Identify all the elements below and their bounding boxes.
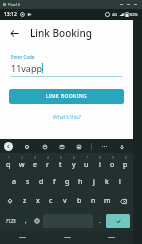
- staticText: 7: [86, 156, 88, 160]
- staticText: 9: [112, 156, 114, 160]
- button[interactable]: h: [74, 172, 87, 191]
- button[interactable]: 1: [1, 153, 15, 172]
- staticText: x: [36, 196, 40, 206]
- staticText: 5: [60, 156, 62, 160]
- staticText: 0: [125, 156, 127, 160]
- button[interactable]: ,: [20, 212, 31, 230]
- button[interactable]: Enter: [106, 214, 130, 228]
- button[interactable]: b: [72, 191, 86, 211]
- staticText: 11vapp: [11, 62, 42, 74]
- staticText: 13:12: [4, 11, 17, 18]
- staticText: What's this?: [53, 114, 81, 121]
- staticText: q: [6, 160, 11, 170]
- button[interactable]: Shift: [1, 191, 18, 211]
- button[interactable]: z: [18, 191, 31, 211]
- staticText: 82%: [130, 12, 138, 17]
- button[interactable]: c: [44, 191, 58, 211]
- button[interactable]: Back: [0, 231, 45, 244]
- button[interactable]: Backspace: [114, 191, 132, 211]
- button[interactable]: v: [58, 191, 72, 211]
- button[interactable]: a: [7, 172, 21, 191]
- staticText: 1: [8, 156, 10, 160]
- button[interactable]: 4: [41, 153, 54, 172]
- staticText: ,: [25, 217, 27, 225]
- staticText: j: [93, 177, 95, 187]
- button[interactable]: ?123: [2, 212, 20, 230]
- button[interactable]: 9: [106, 153, 119, 172]
- staticText: h: [78, 177, 83, 187]
- staticText: l: [119, 177, 121, 187]
- button[interactable]: g: [61, 172, 74, 191]
- button[interactable]: 3: [28, 153, 41, 172]
- staticText: c: [49, 196, 53, 206]
- staticText: p: [123, 160, 128, 170]
- button[interactable]: f: [48, 172, 61, 191]
- button[interactable]: What's this?: [51, 112, 83, 123]
- button[interactable]: 6: [67, 153, 80, 172]
- button[interactable]: 5: [54, 153, 67, 172]
- staticText: n: [91, 196, 96, 206]
- button[interactable]: More options: [100, 142, 109, 151]
- staticText: LINK BOOKING: [46, 93, 88, 100]
- staticText: ?123: [6, 218, 16, 224]
- staticText: s: [26, 177, 30, 187]
- button[interactable]: l: [113, 172, 126, 191]
- staticText: k: [105, 177, 109, 187]
- staticText: v: [63, 196, 67, 206]
- button[interactable]: m: [100, 191, 114, 211]
- button[interactable]: Home: [45, 231, 89, 244]
- button[interactable]: s: [21, 172, 35, 191]
- staticText: 4: [47, 156, 49, 160]
- staticText: 6: [73, 156, 75, 160]
- button[interactable]: Collapse toolbar: [4, 142, 13, 151]
- button[interactable]: Recents: [89, 231, 133, 244]
- staticText: o: [110, 160, 115, 170]
- staticText: r: [46, 160, 49, 170]
- staticText: e: [33, 160, 37, 170]
- staticText: b: [77, 196, 82, 206]
- staticText: d: [39, 177, 44, 187]
- button[interactable]: Clipboard: [74, 142, 83, 151]
- staticText: 4G: [112, 12, 118, 17]
- button[interactable]: Settings: [22, 142, 31, 151]
- button[interactable]: .: [94, 212, 105, 230]
- button[interactable]: LINK BOOKING: [9, 89, 124, 104]
- button[interactable]: 8: [93, 153, 106, 172]
- button[interactable]: Emoji: [31, 212, 42, 230]
- button[interactable]: 0: [119, 153, 132, 172]
- staticText: z: [23, 196, 27, 206]
- button[interactable]: n: [86, 191, 100, 211]
- staticText: g: [65, 177, 70, 187]
- staticText: 2: [21, 156, 23, 160]
- button[interactable]: Enter Code: [11, 54, 122, 77]
- button[interactable]: k: [100, 172, 113, 191]
- staticText: m: [104, 196, 111, 206]
- staticText: w: [19, 160, 25, 170]
- staticText: f: [53, 177, 56, 187]
- staticText: .: [99, 217, 101, 225]
- staticText: t: [59, 160, 62, 170]
- staticText: 8: [99, 156, 101, 160]
- staticText: Enter Code: [11, 54, 35, 60]
- button[interactable]: Back: [6, 25, 22, 41]
- staticText: Pixel 6: [8, 2, 21, 7]
- button[interactable]: x: [31, 191, 44, 211]
- staticText: a: [12, 177, 16, 187]
- staticText: Link Booking: [30, 26, 93, 40]
- staticText: y: [72, 160, 76, 170]
- button[interactable]: Voice input: [117, 142, 126, 151]
- button[interactable]: 7: [80, 153, 93, 172]
- button[interactable]: Stickers: [40, 142, 49, 151]
- button[interactable]: GIF: [57, 142, 66, 151]
- staticText: u: [84, 160, 89, 170]
- button[interactable]: j: [87, 172, 100, 191]
- button[interactable]: 2: [15, 153, 28, 172]
- staticText: i: [99, 160, 101, 170]
- staticText: 3: [34, 156, 36, 160]
- button[interactable]: d: [35, 172, 48, 191]
